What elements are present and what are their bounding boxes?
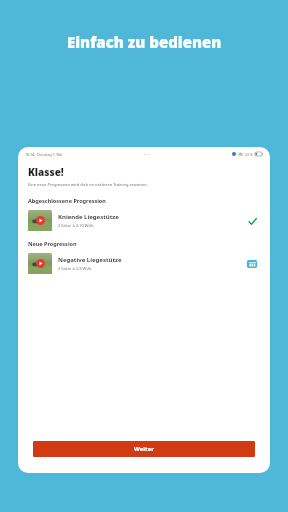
staticText: 23 % bbox=[245, 152, 253, 157]
staticText: 15:14 bbox=[25, 152, 34, 157]
staticText: Dienstag 3. Mai bbox=[37, 152, 63, 157]
staticText: Abgeschlossene Progression bbox=[28, 197, 106, 204]
staticText: Negative Liegestütze bbox=[58, 256, 122, 264]
other: Neue Progression bbox=[247, 260, 257, 268]
other: Abgeschlossen bbox=[247, 216, 257, 226]
staticText: Neue Progression bbox=[28, 240, 77, 247]
button[interactable]: Negative Liegestütze bbox=[28, 253, 260, 274]
staticText: Weiter bbox=[134, 445, 154, 453]
staticText: 3 Sätze à 4-10 Wdh. bbox=[58, 223, 95, 228]
staticText: Eine neue Progression wird dich im nächs… bbox=[28, 182, 148, 187]
staticText: Einfach zu bedienen bbox=[67, 32, 222, 52]
staticText: 3 Sätze à 3-8 Wdh. bbox=[58, 266, 93, 271]
staticText: • • • bbox=[144, 152, 150, 157]
button[interactable]: Kniende Liegestütze bbox=[28, 210, 260, 231]
button[interactable]: Weiter bbox=[33, 441, 255, 457]
staticText: Kniende Liegestütze bbox=[58, 213, 119, 221]
staticText: Klasse! bbox=[28, 165, 64, 179]
